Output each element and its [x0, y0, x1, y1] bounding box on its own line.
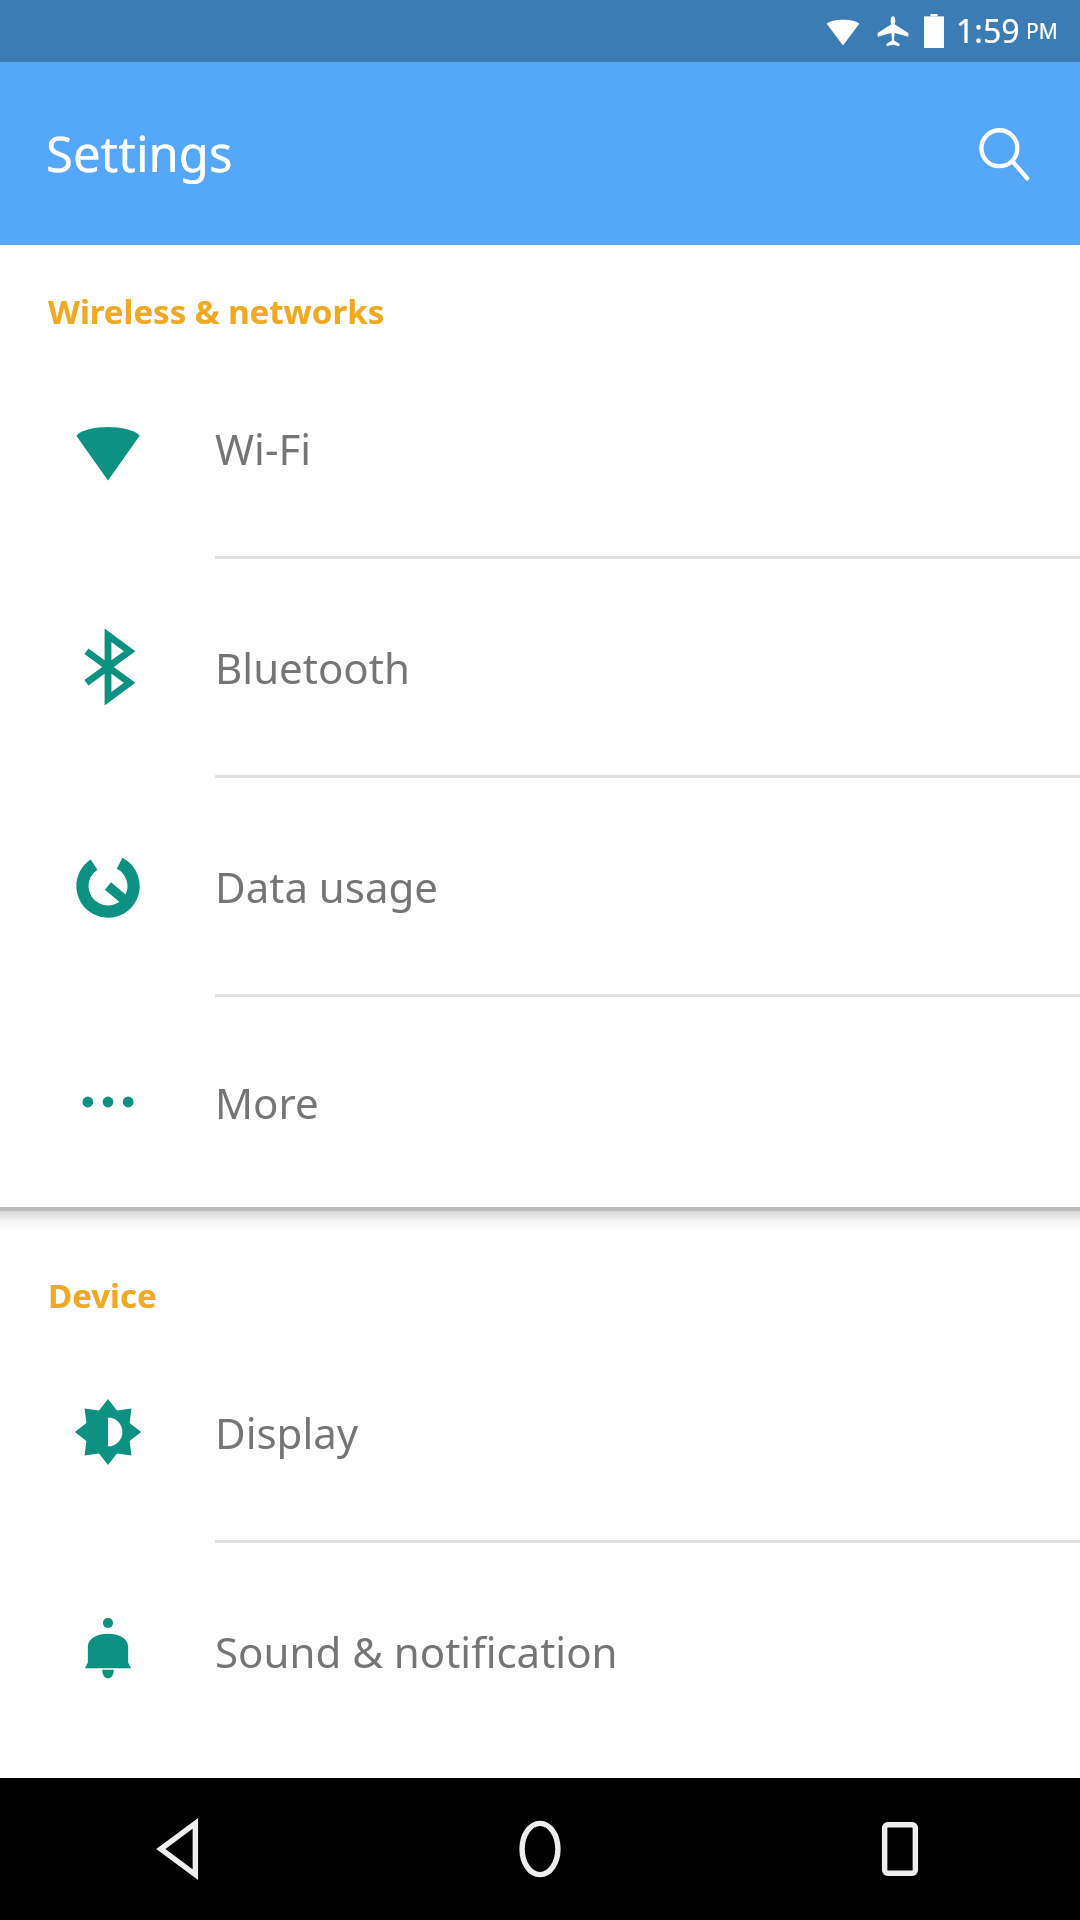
staticText: Sound & notification [215, 1623, 618, 1680]
button[interactable]: Sound & notification [0, 1543, 1080, 1759]
button[interactable]: Search [956, 106, 1052, 202]
staticText: PM [1026, 17, 1058, 46]
button[interactable]: Display [0, 1324, 1080, 1540]
staticText: Wireless & networks [48, 289, 385, 334]
button[interactable]: Back [0, 1778, 360, 1920]
staticText: Display [215, 1404, 359, 1461]
button[interactable]: Home [360, 1778, 720, 1920]
button[interactable]: More [0, 997, 1080, 1207]
button[interactable]: Recents [720, 1778, 1080, 1920]
staticText: Wi-Fi [215, 420, 312, 477]
button[interactable]: Wi-Fi [0, 340, 1080, 556]
staticText: Bluetooth [215, 639, 410, 696]
staticText: More [215, 1074, 319, 1131]
button[interactable]: Bluetooth [0, 559, 1080, 775]
staticText: Settings [46, 120, 233, 187]
staticText: Data usage [215, 858, 439, 915]
staticText: 1:59 [956, 9, 1020, 53]
button[interactable]: Data usage [0, 778, 1080, 994]
staticText: Device [48, 1273, 157, 1318]
